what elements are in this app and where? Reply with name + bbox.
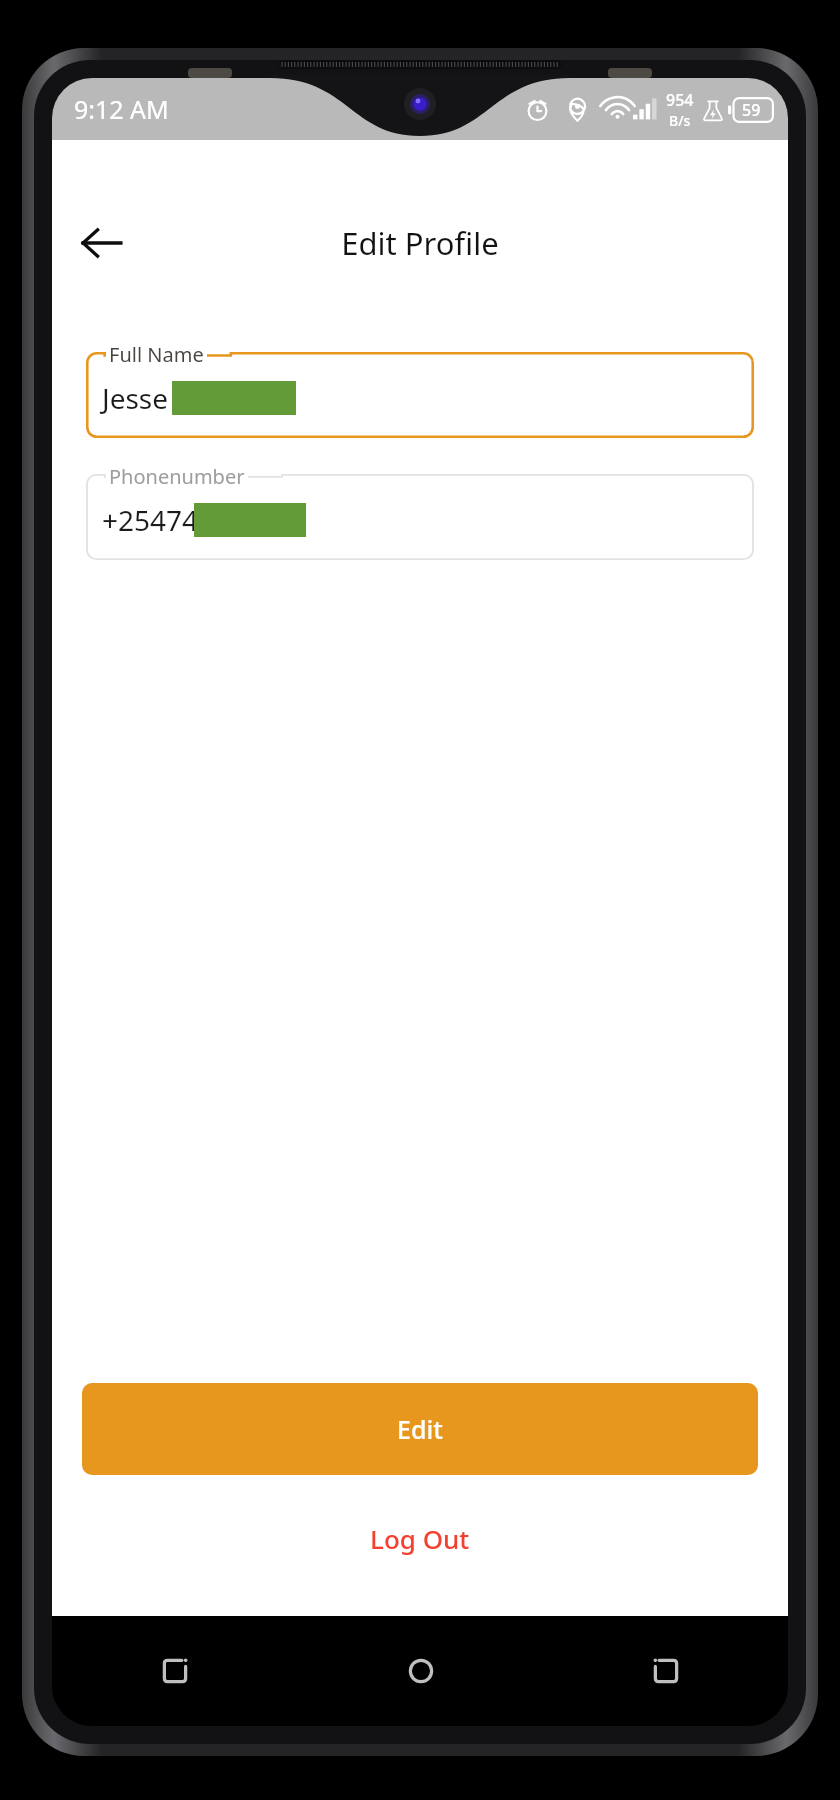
staticText: Jesse <box>102 379 169 417</box>
button[interactable]: Phonenumber <box>86 474 754 560</box>
staticText: Full Name <box>109 341 204 368</box>
button[interactable]: Recents <box>52 1616 298 1726</box>
staticText: Edit <box>397 1412 443 1446</box>
button[interactable]: Log Out <box>52 1513 788 1564</box>
button[interactable]: Full Name <box>86 352 754 438</box>
staticText: Edit Profile <box>341 222 499 264</box>
staticText: Phonenumber <box>109 463 245 490</box>
button[interactable]: Home <box>298 1616 543 1726</box>
staticText: 954 <box>666 89 694 111</box>
staticText: 59 <box>742 99 761 121</box>
staticText: Log Out <box>370 1521 470 1556</box>
staticText: +25474 <box>102 501 199 539</box>
staticText: 9:12 AM <box>74 92 169 126</box>
button[interactable]: Back <box>543 1616 788 1726</box>
staticText: B/s <box>669 111 691 130</box>
button[interactable]: Edit <box>82 1383 758 1475</box>
button[interactable]: Back <box>66 207 138 279</box>
